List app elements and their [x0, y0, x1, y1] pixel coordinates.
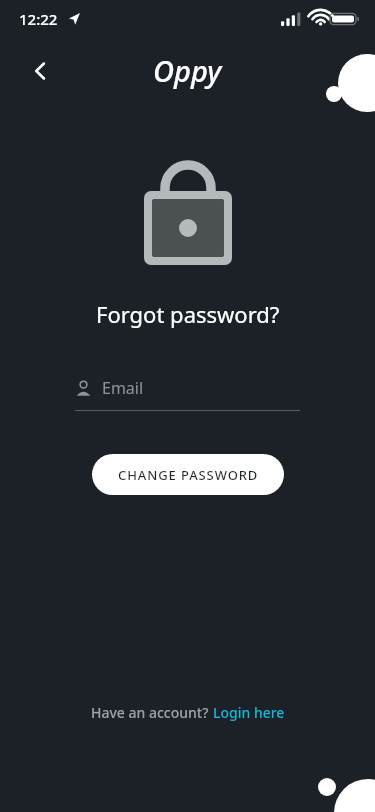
staticText: Oppy [153, 51, 222, 90]
staticText: 12:22 [19, 9, 58, 29]
staticText: Forgot password? [96, 299, 280, 329]
staticText: Email [102, 377, 144, 399]
button[interactable]: Back [18, 49, 62, 93]
button[interactable]: CHANGE PASSWORD [92, 454, 284, 495]
button[interactable]: Email [75, 377, 300, 411]
staticText: CHANGE PASSWORD [118, 466, 259, 484]
button[interactable]: Login here [213, 703, 285, 722]
staticText: Login here [213, 703, 285, 722]
staticText: Have an account? [91, 703, 213, 722]
